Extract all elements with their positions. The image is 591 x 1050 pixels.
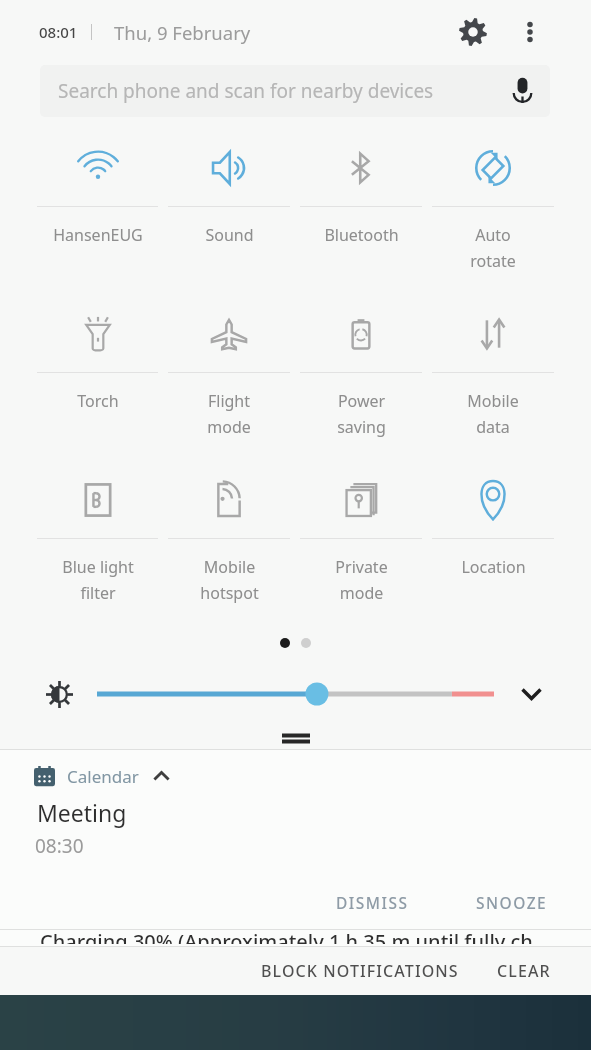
button[interactable]: Torch xyxy=(32,296,163,462)
button[interactable]: Power saving xyxy=(295,296,427,462)
button[interactable]: Collapse panel xyxy=(0,728,591,748)
button[interactable]: Location xyxy=(427,462,559,628)
button[interactable]: Blue light filter xyxy=(32,462,163,628)
staticText: Mobile hotspot xyxy=(200,556,259,604)
staticText: Torch xyxy=(77,390,119,412)
staticText: BLOCK NOTIFICATIONS xyxy=(261,960,459,982)
button[interactable]: Bluetooth xyxy=(295,130,427,296)
staticText: Blue light filter xyxy=(62,556,134,604)
staticText: DISMISS xyxy=(336,892,409,913)
staticText: Mobile data xyxy=(467,390,519,438)
button[interactable]: Expand brightness xyxy=(511,674,551,714)
button[interactable]: CLEAR xyxy=(483,947,565,995)
button[interactable]: DISMISS xyxy=(322,884,423,920)
button[interactable]: Mobile hotspot xyxy=(163,462,295,628)
staticText: Private mode xyxy=(335,556,388,604)
staticText: HansenEUG xyxy=(53,224,143,246)
staticText: Auto rotate xyxy=(470,224,516,272)
staticText: Bluetooth xyxy=(324,224,399,246)
button[interactable]: Calendar xyxy=(34,764,170,788)
staticText: Meeting xyxy=(37,797,127,828)
button[interactable]: Settings xyxy=(449,14,497,50)
staticText: Charging 30% (Approximately 1 h 35 m unt… xyxy=(40,928,533,944)
button[interactable]: Sound xyxy=(163,130,295,296)
button[interactable]: SNOOZE xyxy=(462,884,562,920)
button[interactable]: Voice search xyxy=(505,74,539,108)
staticText: Sound xyxy=(205,224,254,246)
staticText: Flight mode xyxy=(207,390,251,438)
staticText: SNOOZE xyxy=(476,892,548,913)
button[interactable]: Auto rotate xyxy=(427,130,559,296)
staticText: Thu, 9 February xyxy=(114,20,251,45)
button[interactable]: Private mode xyxy=(295,462,427,628)
button[interactable]: More options xyxy=(506,14,554,50)
staticText: Location xyxy=(461,556,526,578)
staticText: CLEAR xyxy=(497,960,551,982)
button[interactable]: Search phone and scan for nearby devices xyxy=(40,65,550,117)
button[interactable]: BLOCK NOTIFICATIONS xyxy=(247,947,473,995)
button[interactable]: Mobile data xyxy=(427,296,559,462)
staticText: Calendar xyxy=(67,765,139,788)
staticText: 08:01 xyxy=(39,22,78,42)
staticText: Search phone and scan for nearby devices xyxy=(58,78,434,104)
button[interactable]: HansenEUG xyxy=(32,130,163,296)
staticText: Power saving xyxy=(337,390,386,438)
button[interactable]: Flight mode xyxy=(163,296,295,462)
staticText: 08:30 xyxy=(35,833,84,859)
